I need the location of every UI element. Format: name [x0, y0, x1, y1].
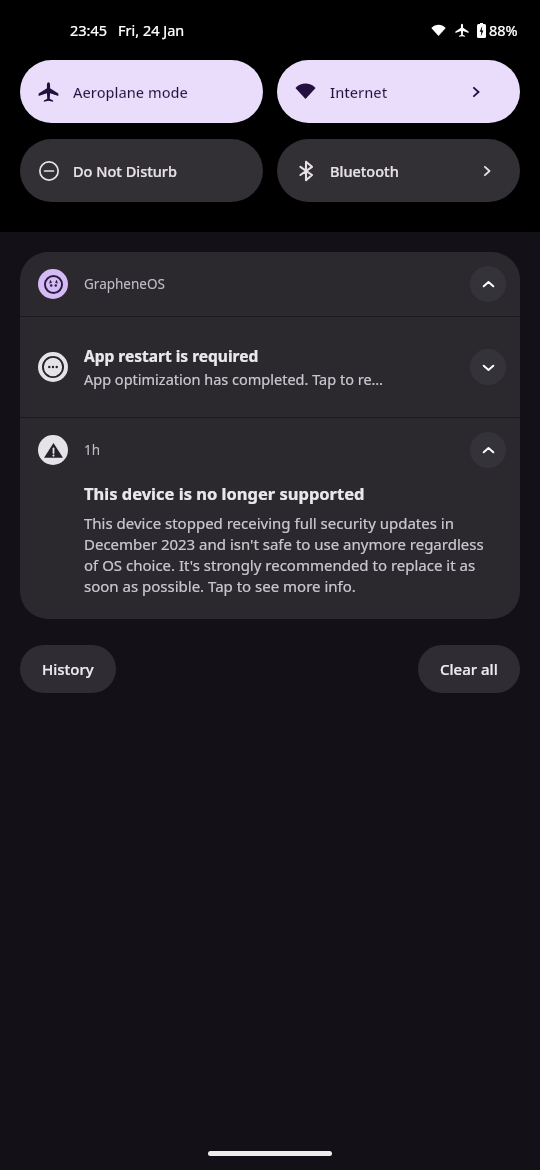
staticText: App restart is required: [84, 345, 259, 366]
staticText: 23:45: [70, 20, 108, 40]
staticText: 1h: [84, 441, 101, 459]
staticText: GrapheneOS: [84, 275, 165, 293]
staticText: Clear all: [440, 659, 498, 679]
button[interactable]: Expand notification: [470, 349, 506, 385]
button[interactable]: Aeroplane mode: [20, 60, 263, 123]
staticText: History: [42, 659, 94, 679]
staticText: Fri, 24 Jan: [118, 20, 185, 40]
button[interactable]: GrapheneOS: [20, 252, 520, 316]
staticText: This device is no longer supported: [84, 482, 365, 504]
button[interactable]: Collapse notification: [470, 432, 506, 468]
staticText: Do Not Disturb: [73, 161, 177, 181]
button[interactable]: History: [20, 645, 116, 693]
staticText: This device stopped receiving full secur…: [84, 513, 500, 597]
button[interactable]: Collapse group: [470, 266, 506, 302]
button[interactable]: 1h: [20, 418, 520, 619]
staticText: Internet: [330, 82, 388, 102]
staticText: 88%: [489, 20, 518, 40]
button[interactable]: Do Not Disturb: [20, 139, 263, 202]
button[interactable]: Internet: [277, 60, 520, 123]
button[interactable]: App restart is required: [20, 317, 520, 417]
staticText: App optimization has completed. Tap to r…: [84, 369, 384, 389]
button[interactable]: Bluetooth: [277, 139, 520, 202]
staticText: Bluetooth: [330, 161, 399, 181]
staticText: Aeroplane mode: [73, 82, 188, 102]
button[interactable]: Clear all: [418, 645, 520, 693]
